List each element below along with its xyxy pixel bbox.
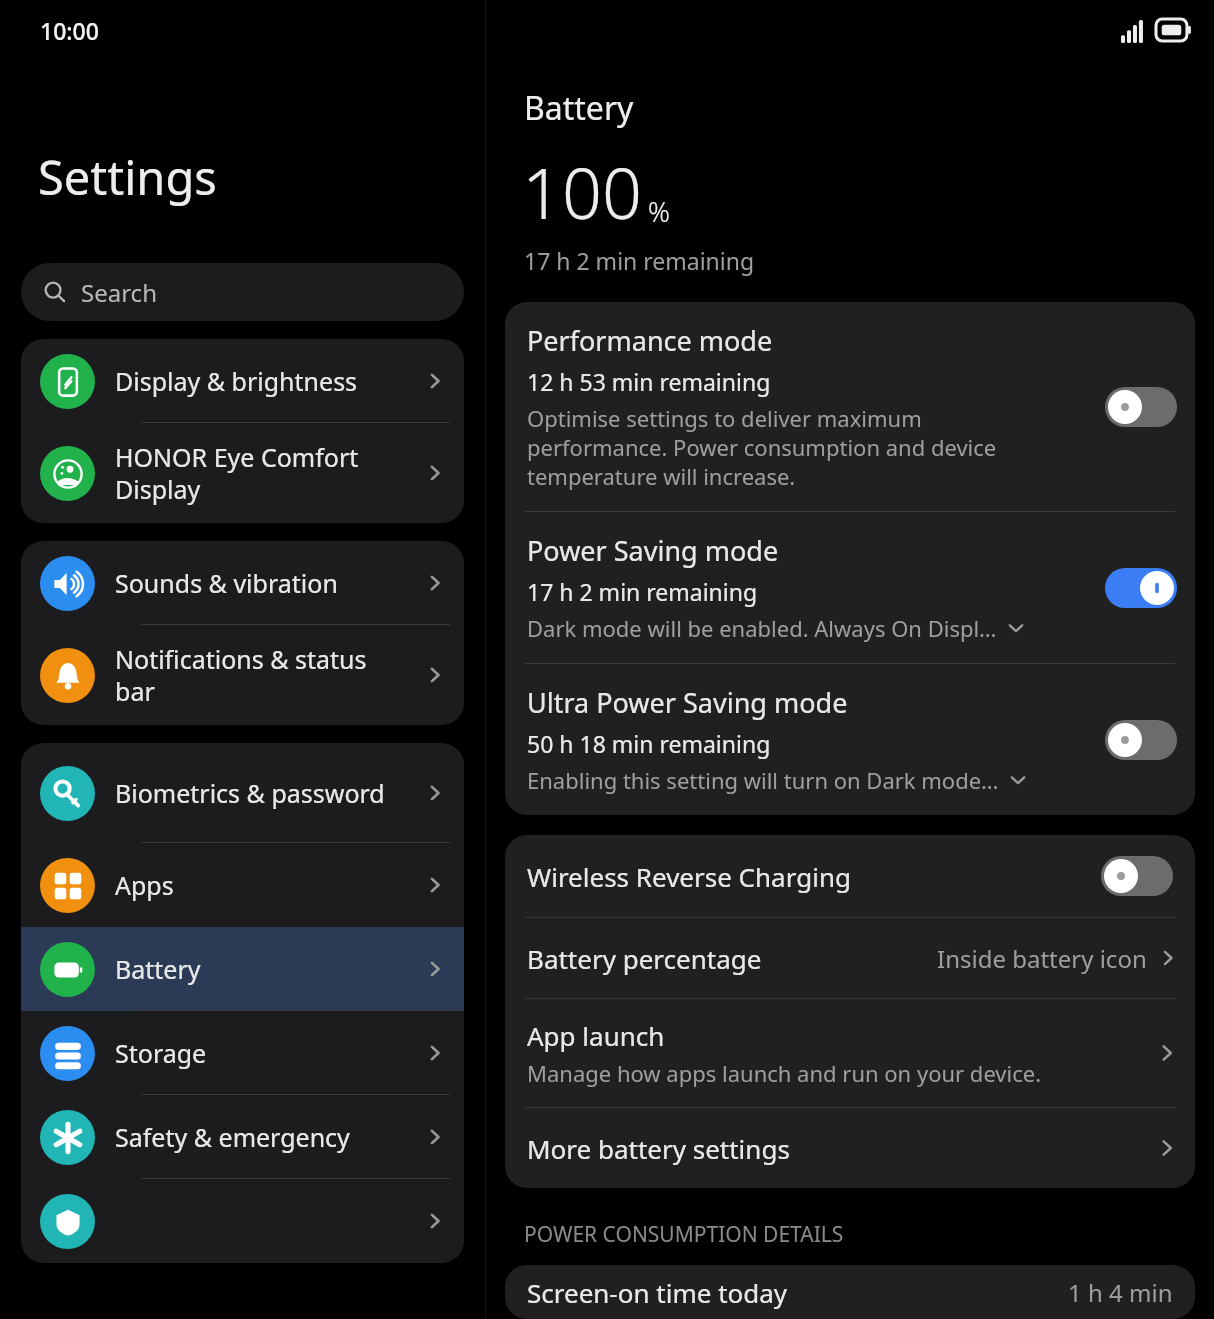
staticText: Safety & emergency: [115, 1120, 412, 1154]
staticText: POWER CONSUMPTION DETAILS: [524, 1220, 844, 1249]
button[interactable]: Display & brightness: [21, 339, 464, 423]
staticText: Notifications & status bar: [115, 642, 412, 708]
button[interactable]: Sounds & vibration: [21, 541, 464, 625]
staticText: Sounds & vibration: [115, 566, 412, 600]
staticText: Battery: [524, 86, 634, 130]
staticText: Ultra Power Saving mode: [527, 684, 848, 721]
staticText: Biometrics & password: [115, 776, 412, 810]
button[interactable]: Ultra Power Saving mode: [505, 664, 1195, 815]
button[interactable]: HONOR Eye Comfort Display: [21, 423, 464, 523]
button[interactable]: Power Saving mode: [505, 512, 1195, 663]
staticText: Inside battery icon: [937, 942, 1147, 975]
button[interactable]: App launch: [505, 999, 1195, 1107]
staticText: Optimise settings to deliver maximum per…: [527, 403, 997, 491]
staticText: Enabling this setting will turn on Dark …: [527, 765, 999, 795]
staticText: More battery settings: [527, 1131, 1155, 1166]
staticText: 100: [522, 144, 642, 239]
staticText: Storage: [115, 1036, 412, 1070]
staticText: Power Saving mode: [527, 532, 779, 569]
staticText: Settings: [38, 145, 217, 209]
button[interactable]: Search: [21, 263, 464, 321]
staticText: Apps: [115, 868, 412, 902]
staticText: 17 h 2 min remaining: [527, 576, 758, 607]
button[interactable]: Safety & emergency: [21, 1095, 464, 1179]
button[interactable]: Notifications & status bar: [21, 625, 464, 725]
staticText: Dark mode will be enabled. Always On Dis…: [527, 613, 997, 643]
button[interactable]: Toggle on: [1105, 568, 1177, 608]
button[interactable]: Toggle off: [1101, 856, 1173, 896]
staticText: Battery: [115, 952, 412, 986]
button[interactable]: Battery percentage: [505, 918, 1195, 998]
button[interactable]: More battery settings: [505, 1108, 1195, 1188]
staticText: 50 h 18 min remaining: [527, 728, 771, 759]
staticText: Manage how apps launch and run on your d…: [527, 1058, 1042, 1088]
staticText: 17 h 2 min remaining: [524, 245, 755, 276]
staticText: Display & brightness: [115, 364, 412, 398]
button[interactable]: Biometrics & password: [21, 743, 464, 843]
staticText: HONOR Eye Comfort Display: [115, 440, 412, 506]
staticText: Performance mode: [527, 322, 773, 359]
staticText: Screen-on time today: [527, 1275, 1068, 1310]
button[interactable]: Storage: [21, 1011, 464, 1095]
staticText: Battery percentage: [527, 941, 937, 976]
staticText: Search: [81, 276, 157, 309]
staticText: %: [648, 193, 670, 230]
button[interactable]: Apps: [21, 843, 464, 927]
button[interactable]: Toggle off: [1105, 720, 1177, 760]
button[interactable]: [21, 1179, 464, 1263]
button[interactable]: Wireless Reverse Charging: [505, 835, 1195, 917]
staticText: 10:00: [40, 15, 99, 46]
staticText: Wireless Reverse Charging: [527, 859, 1101, 894]
staticText: 1 h 4 min: [1068, 1276, 1173, 1309]
staticText: App launch: [527, 1018, 665, 1053]
staticText: 12 h 53 min remaining: [527, 366, 771, 397]
button[interactable]: Performance mode: [505, 302, 1195, 511]
button[interactable]: Screen-on time today: [505, 1265, 1195, 1319]
button[interactable]: Toggle off: [1105, 387, 1177, 427]
button[interactable]: Battery: [21, 927, 464, 1011]
